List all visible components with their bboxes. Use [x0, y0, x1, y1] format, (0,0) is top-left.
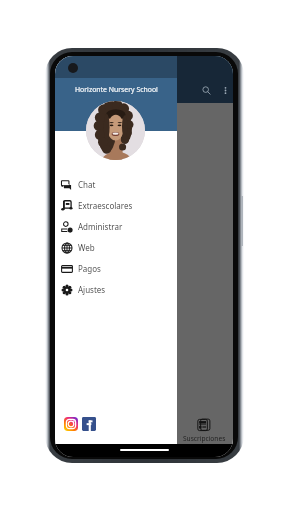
button[interactable]: Chat	[55, 174, 177, 195]
staticText: Web	[78, 242, 95, 253]
button[interactable]: Shorts	[95, 408, 135, 444]
button[interactable]: Suscripciones	[175, 408, 233, 444]
button[interactable]: Administrar	[55, 216, 177, 237]
staticText: Horizonte Nursery School	[75, 85, 158, 94]
button[interactable]: More options	[216, 81, 233, 100]
button[interactable]: Ajustes	[55, 279, 177, 300]
button[interactable]: Search	[197, 81, 216, 100]
staticText: Administrar	[78, 221, 123, 232]
staticText: Suscripciones	[183, 434, 226, 443]
staticText: Ajustes	[78, 284, 106, 295]
button[interactable]: Extraescolares	[55, 195, 177, 216]
staticText: Extraescolares	[78, 200, 133, 211]
button[interactable]: Pagos	[55, 258, 177, 279]
button[interactable]: Inicio	[55, 408, 95, 444]
button[interactable]: Web	[55, 237, 177, 258]
staticText: Pagos	[78, 263, 101, 274]
staticText: Chat	[78, 179, 96, 190]
